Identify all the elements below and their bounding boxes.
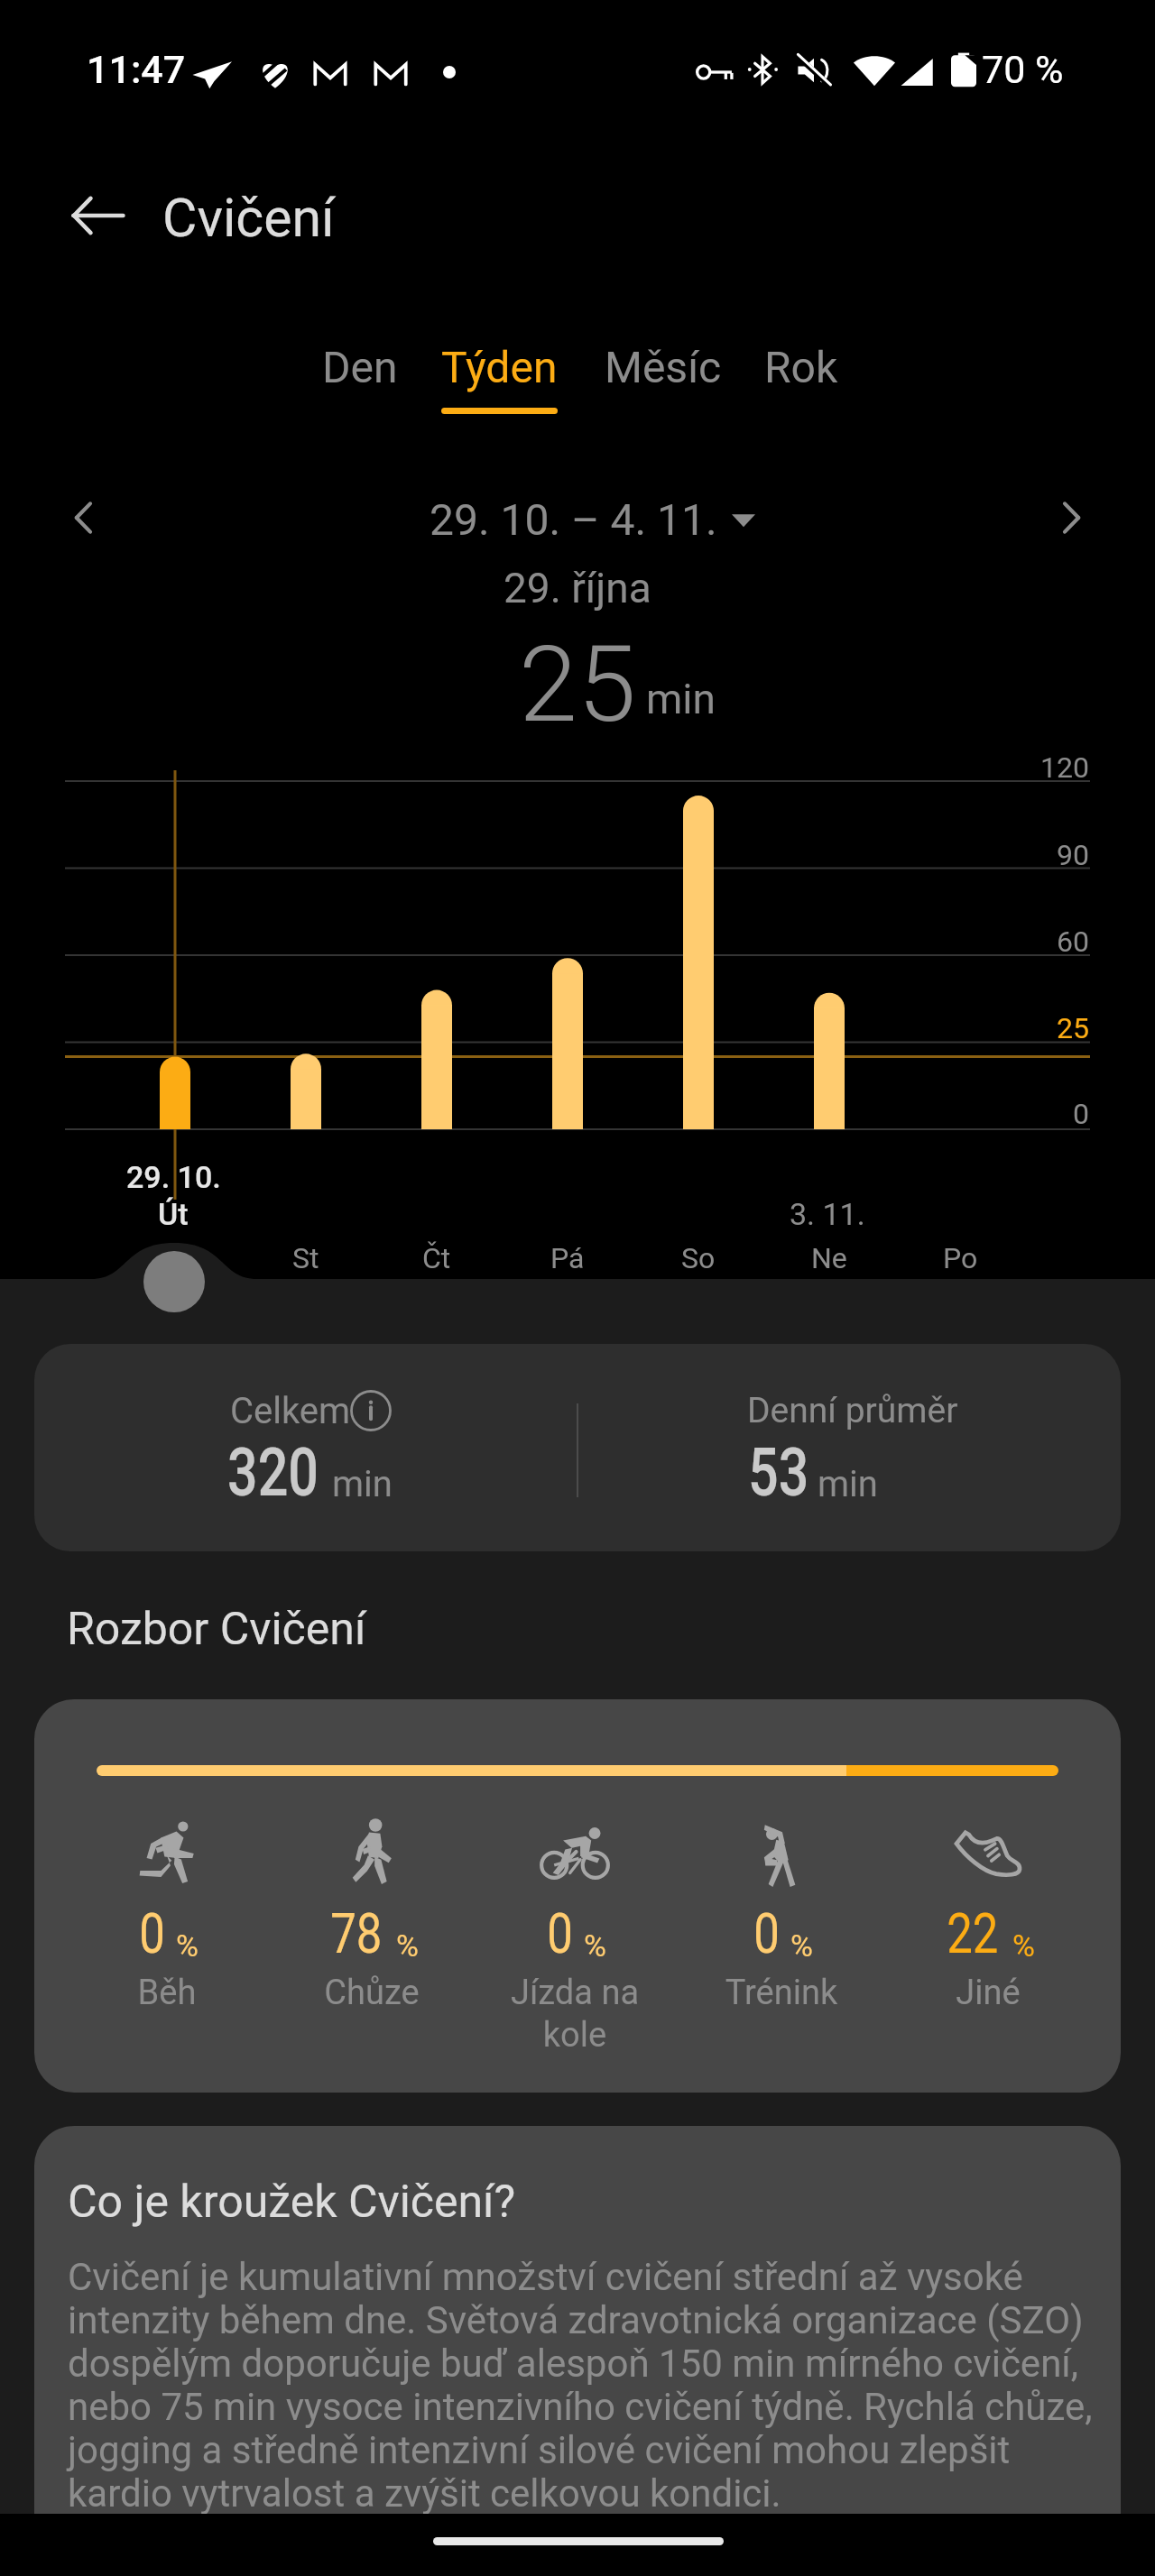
staticText: 29. 10. [126,1159,221,1195]
staticText: 29. října [504,564,651,612]
staticText: % [584,1927,606,1964]
staticText: Chůze [273,1973,471,2013]
button[interactable] [34,1699,1121,2093]
button[interactable]: 0 [68,1795,266,2011]
staticText: % [1012,1927,1035,1964]
staticText: Pá [550,1241,585,1275]
staticText: St [292,1241,319,1275]
staticText: Po [943,1241,978,1275]
staticText: 120 [1040,750,1089,785]
staticText: % [176,1927,199,1964]
staticText: Týden [441,342,558,392]
staticText: 25 [519,622,636,746]
button[interactable]: Co je kroužek Cvičení? [34,2126,1121,2576]
staticText: 78 [331,1900,382,1966]
staticText: 0 [1073,1097,1089,1131]
button[interactable]: 22 [889,1795,1087,2011]
staticText: min [818,1463,878,1505]
staticText: Rok [764,342,838,392]
staticText: 3. 11. [790,1196,865,1232]
staticText: Den [322,342,398,392]
button[interactable]: Home [433,2537,724,2545]
staticText: Cvičení je kumulativní množství cvičení … [68,2255,1121,2516]
button[interactable]: Týden [414,342,585,432]
button[interactable]: Back [52,170,143,261]
button[interactable]: Den [298,342,421,432]
staticText: Denní průměr [747,1390,958,1431]
staticText: Celkem [230,1390,351,1432]
staticText: Út [158,1196,189,1232]
staticText: 0 [139,1900,165,1966]
button[interactable]: 78 [273,1795,471,2011]
staticText: 53 [748,1433,809,1512]
staticText: 0 [754,1900,780,1966]
staticText: 11:47 [87,47,186,92]
staticText: 0 [547,1900,573,1966]
button[interactable]: Měsíc [580,342,745,432]
staticText: Cvičení [162,187,335,249]
staticText: Měsíc [605,342,722,392]
staticText: 22 [947,1900,999,1966]
button[interactable]: Rok [739,342,863,432]
button[interactable]: 0 [476,1795,674,2011]
button[interactable]: 0 [682,1795,881,2011]
staticText: 320 [227,1433,319,1512]
staticText: 25 [1057,1011,1089,1045]
staticText: min [646,675,716,723]
staticText: Jiné [889,1973,1087,2013]
staticText: Běh [68,1973,266,2013]
staticText: 70 % [982,47,1064,92]
staticText: 90 [1057,838,1089,872]
staticText: 29. 10. – 4. 11. [430,494,717,545]
staticText: So [681,1241,716,1275]
staticText: Čt [422,1241,451,1275]
staticText: 60 [1057,925,1089,959]
button[interactable]: Previous week [47,480,123,556]
staticText: % [790,1927,813,1964]
staticText: min [332,1463,393,1505]
button[interactable]: Celkem [34,1344,1121,1551]
staticText: Co je kroužek Cvičení? [68,2176,516,2229]
staticText: % [396,1927,419,1964]
button[interactable]: Next week [1032,480,1108,556]
staticText: Rozbor Cvičení [67,1603,366,1656]
staticText: Jízda na kole [476,1973,674,2055]
button[interactable]: 29. 10. – 4. 11. [430,494,755,545]
staticText: Ne [811,1241,847,1275]
staticText: Trénink [682,1973,881,2013]
